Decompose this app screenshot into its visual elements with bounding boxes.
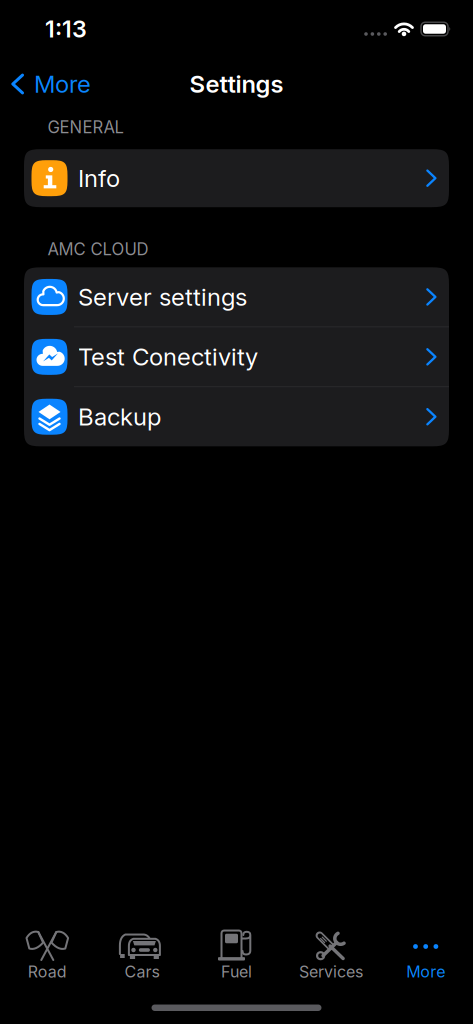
button[interactable]: Road [0,928,95,981]
button[interactable]: Services [284,928,378,981]
staticText: Server settings [78,282,247,311]
staticText: Settings [189,69,283,98]
staticText: Cars [124,962,159,981]
staticText: 1:13 [45,15,87,43]
button[interactable]: More [378,928,473,981]
button[interactable]: Test Conectivity [24,327,449,386]
button[interactable]: Fuel [189,928,284,981]
button[interactable]: Info [24,149,449,207]
staticText: Info [78,164,120,193]
staticText: More [406,962,445,981]
staticText: Services [299,962,363,981]
button[interactable]: Back [0,69,91,98]
staticText: Road [28,962,67,981]
staticText: GENERAL [47,117,123,137]
button[interactable]: Server settings [24,267,449,326]
staticText: AMC CLOUD [47,239,148,259]
staticText: More [34,69,91,98]
button[interactable]: Cars [95,928,189,981]
staticText: Backup [78,402,161,431]
button[interactable]: Backup [24,387,449,446]
staticText: Test Conectivity [78,342,258,371]
staticText: Fuel [221,962,252,981]
